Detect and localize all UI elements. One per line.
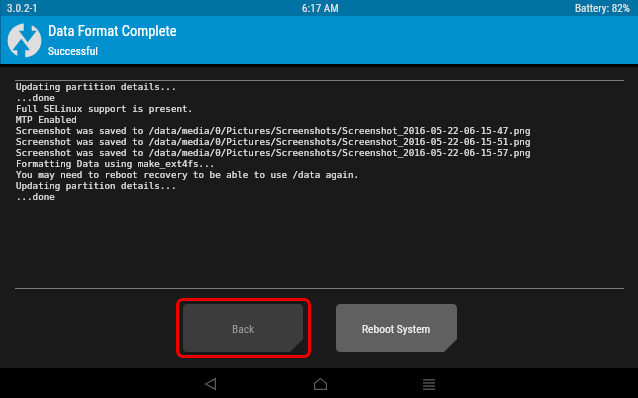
button[interactable]: Back: [193, 369, 227, 398]
staticText: Reboot System: [362, 322, 431, 335]
staticText: Screenshot was saved to /data/media/0/Pi…: [16, 136, 531, 147]
button[interactable]: Recent apps: [412, 369, 446, 398]
button[interactable]: Back: [183, 304, 303, 352]
staticText: Screenshot was saved to /data/media/0/Pi…: [16, 125, 531, 136]
button[interactable]: Reboot System: [336, 304, 457, 352]
staticText: Successful: [48, 44, 98, 57]
staticText: ...done: [16, 92, 55, 103]
staticText: Full SELinux support is present.: [16, 103, 194, 114]
staticText: MTP Enabled: [16, 114, 77, 125]
staticText: 3.0.2-1: [7, 2, 38, 15]
staticText: Screenshot was saved to /data/media/0/Pi…: [16, 147, 531, 158]
staticText: Updating partition details...: [16, 81, 177, 92]
staticText: Formatting Data using make_ext4fs...: [16, 158, 216, 169]
staticText: Data Format Complete: [48, 23, 177, 40]
staticText: 6:17 AM: [302, 2, 339, 15]
staticText: Battery: 82%: [575, 2, 630, 15]
button[interactable]: Home: [303, 369, 337, 398]
staticText: Back: [232, 322, 255, 335]
staticText: Updating partition details...: [16, 180, 177, 191]
staticText: You may need to reboot recovery to be ab…: [16, 169, 359, 180]
staticText: ...done: [16, 191, 55, 202]
